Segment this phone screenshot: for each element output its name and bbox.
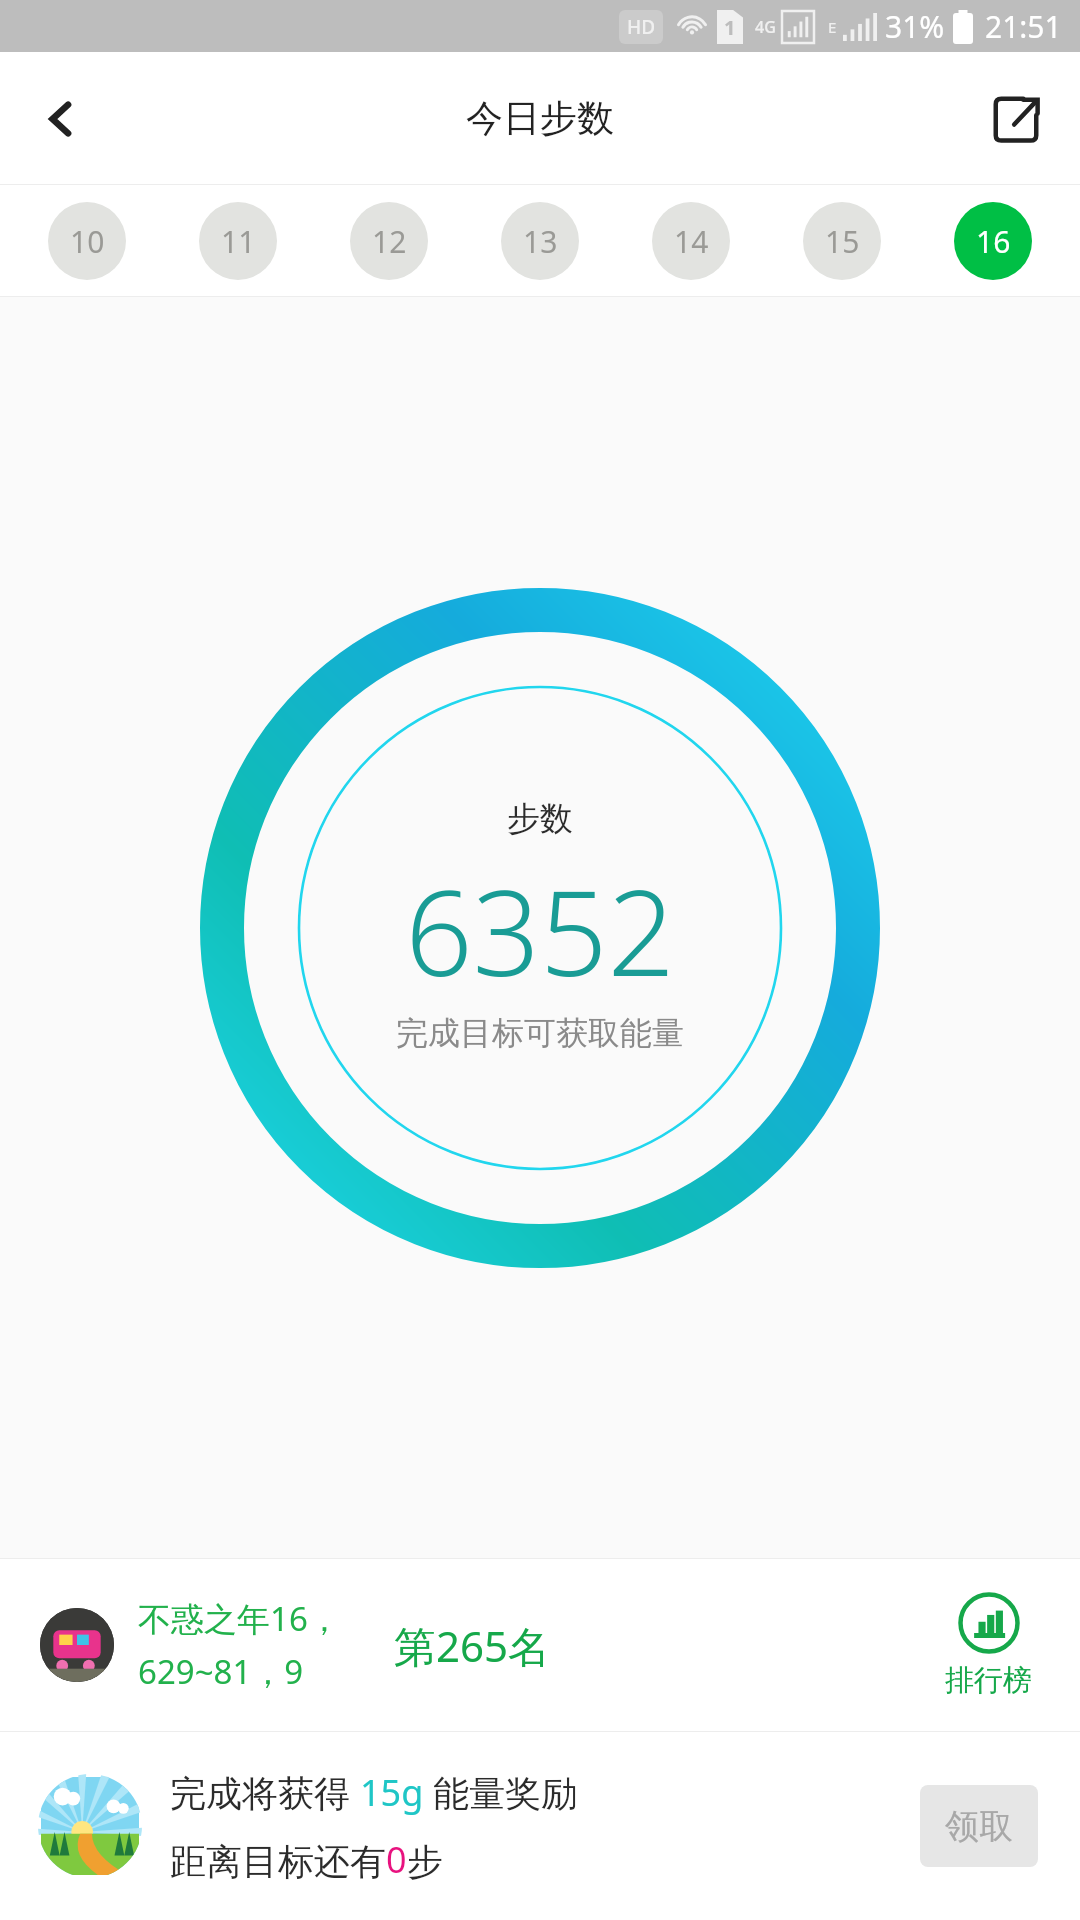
- staticText: E: [828, 17, 837, 37]
- staticText: 能量奖励: [424, 1768, 578, 1817]
- staticText: 排行榜: [945, 1662, 1032, 1699]
- staticText: 15: [825, 221, 860, 262]
- staticText: 今日步数: [466, 95, 614, 142]
- button[interactable]: 不惑之年16，: [0, 1559, 1080, 1731]
- staticText: 13: [523, 221, 558, 262]
- staticText: 14: [674, 221, 709, 262]
- button[interactable]: 16: [954, 202, 1032, 280]
- staticText: 4G: [755, 16, 776, 38]
- staticText: 领取: [945, 1805, 1013, 1848]
- staticText: HD: [627, 14, 656, 40]
- button[interactable]: 排行榜: [945, 1592, 1032, 1699]
- button[interactable]: 10: [48, 202, 126, 280]
- staticText: 不惑之年16，: [138, 1596, 341, 1641]
- staticText: 完成将获得: [170, 1768, 360, 1817]
- staticText: 10: [70, 221, 105, 262]
- button[interactable]: Share: [978, 81, 1054, 157]
- staticText: 11: [221, 221, 256, 262]
- button[interactable]: 12: [350, 202, 428, 280]
- button[interactable]: 13: [501, 202, 579, 280]
- staticText: 12: [372, 221, 407, 262]
- button[interactable]: 15: [803, 202, 881, 280]
- button[interactable]: 11: [199, 202, 277, 280]
- staticText: 31%: [885, 6, 945, 47]
- button[interactable]: 14: [652, 202, 730, 280]
- staticText: 6352: [405, 850, 675, 1011]
- staticText: 21:51: [985, 6, 1062, 47]
- button[interactable]: Back: [26, 83, 98, 155]
- staticText: 0: [386, 1835, 407, 1884]
- staticText: 629~81，9: [138, 1649, 304, 1694]
- button[interactable]: 领取: [920, 1785, 1038, 1867]
- staticText: 距离目标还有: [170, 1839, 386, 1884]
- staticText: 步数: [507, 798, 573, 840]
- staticText: 1: [724, 14, 736, 41]
- staticText: 第265名: [394, 1617, 551, 1674]
- staticText: 16: [976, 221, 1011, 262]
- staticText: 15g: [360, 1768, 424, 1817]
- staticText: 完成目标可获取能量: [396, 1013, 684, 1053]
- staticText: 步: [407, 1839, 443, 1884]
